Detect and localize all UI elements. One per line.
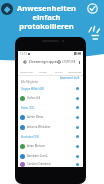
button[interactable]: Bestaetigt	[87, 3, 98, 14]
staticText: Paten (2/2)	[21, 106, 35, 110]
button[interactable]: Anwesend	[76, 97, 79, 100]
button[interactable]: Achim Weiss	[18, 112, 83, 122]
button[interactable]: Anwesend	[76, 106, 79, 109]
button[interactable]: Caroline Dambeck	[18, 161, 83, 167]
button[interactable]: Anwesend	[76, 135, 79, 138]
staticText: Anwesenheiten einfach protokollieren	[14, 3, 79, 31]
button[interactable]: Anwesend	[76, 116, 79, 119]
button[interactable]: Anwesend	[76, 155, 79, 158]
button[interactable]: LISTEN	[35, 67, 51, 75]
staticText: LISTEN	[39, 70, 48, 73]
button[interactable]: PERSONEN	[18, 67, 35, 75]
button[interactable]: ABWESEND	[67, 67, 83, 75]
button[interactable]: Anwesend	[76, 145, 79, 148]
staticText: Bambam Crook	[27, 154, 48, 158]
staticText: 12:13	[20, 52, 27, 56]
button[interactable]: Bambam Crook	[18, 151, 83, 161]
staticText: PERSONEN	[20, 70, 33, 73]
staticText: Gruppe Wilde (4/4)	[21, 87, 44, 91]
button[interactable]: Stoppuhr	[57, 60, 61, 64]
button[interactable]: SETUP	[51, 67, 67, 75]
staticText: Stefan Gill	[27, 96, 41, 100]
staticText: Alle Mitglieder	[21, 80, 39, 84]
button[interactable]: Zurueck	[22, 59, 27, 64]
staticText: Dreamigruppe	[29, 59, 57, 64]
button[interactable]: Stefan Gill	[18, 93, 83, 103]
staticText: Kursleiter (3/3)	[21, 135, 39, 139]
button[interactable]: Anwesend	[76, 126, 79, 129]
staticText: Arian Meisner	[27, 144, 46, 148]
button[interactable]: Anwesend	[76, 87, 79, 90]
button[interactable]: Mehr	[77, 60, 81, 64]
staticText: Anwesend: 4v/4	[60, 76, 80, 80]
staticText: Caroline Dambeck	[27, 162, 51, 166]
button[interactable]: Antonia Weissbier	[18, 122, 83, 132]
staticText: STOPPUHR	[62, 60, 76, 64]
staticText: Antonia Weissbier	[27, 125, 51, 129]
button[interactable]: Anwesend	[76, 163, 79, 166]
staticText: Achim Weiss	[27, 115, 44, 119]
staticText: ABWESEND	[68, 70, 82, 73]
staticText: SETUP	[55, 70, 63, 73]
button[interactable]: Arian Meisner	[18, 141, 83, 151]
